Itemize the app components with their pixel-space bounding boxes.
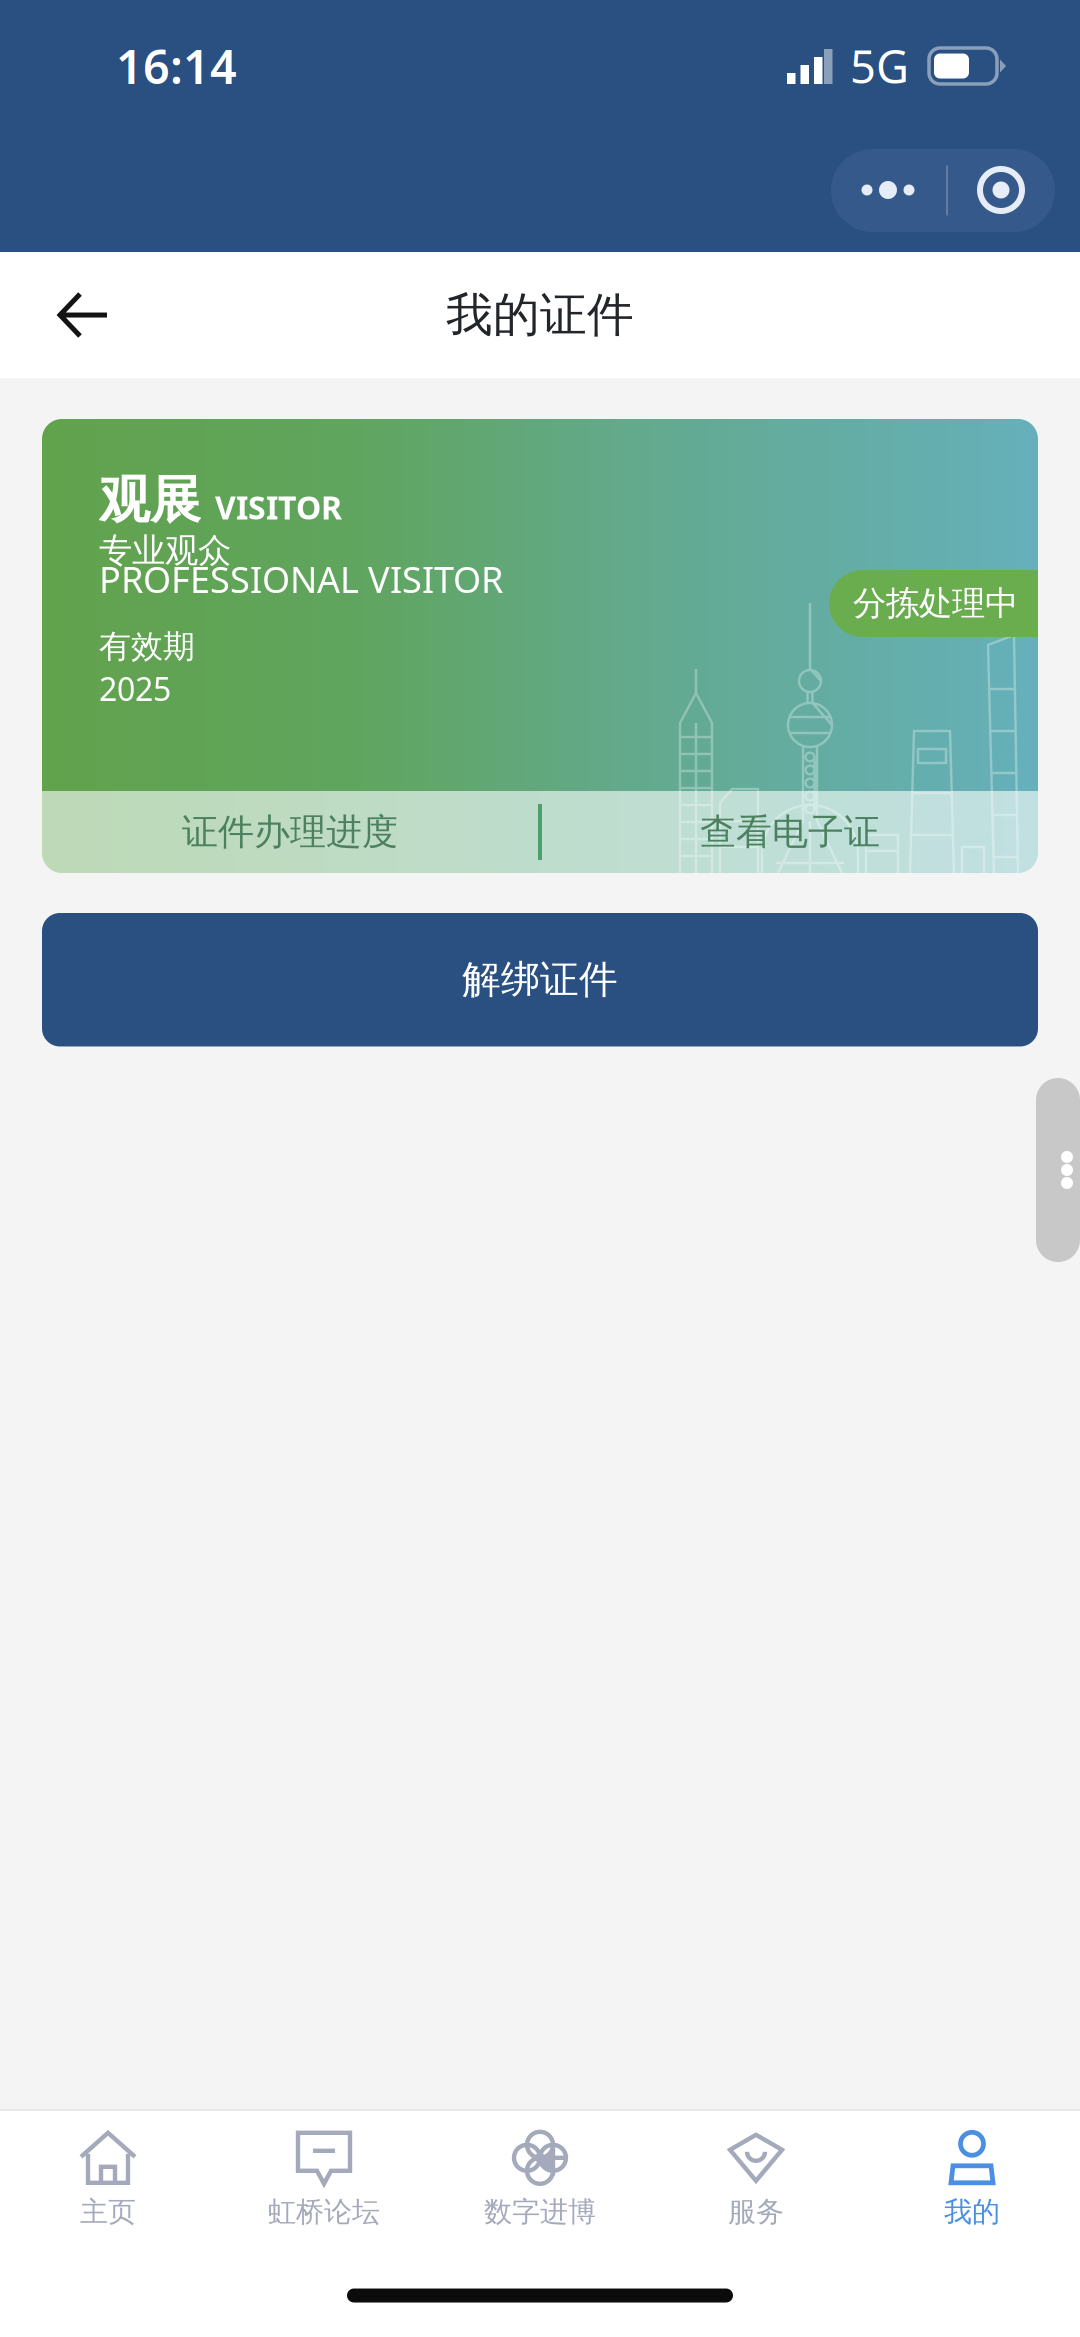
staticText: PROFESSIONAL VISITOR (99, 555, 503, 603)
button[interactable]: Close (948, 149, 1055, 232)
staticText: 查看电子证 (700, 810, 880, 854)
button[interactable]: Back (0, 264, 151, 366)
button[interactable]: 解绑证件 (42, 913, 1038, 1046)
staticText: 专业观众 (99, 530, 231, 571)
button[interactable]: 证件办理进度 (42, 787, 538, 877)
staticText: 16:14 (116, 35, 237, 97)
staticText: 虹桥论坛 (268, 2195, 380, 2229)
staticText: 5G (850, 36, 909, 96)
button[interactable]: More (831, 149, 946, 232)
button[interactable]: 主页 (0, 2118, 216, 2247)
staticText: 我的证件 (446, 286, 634, 344)
staticText: 服务 (728, 2195, 784, 2229)
staticText: 分拣处理中 (853, 583, 1018, 624)
staticText: 证件办理进度 (182, 810, 398, 854)
button[interactable]: 查看电子证 (542, 787, 1038, 877)
button[interactable]: 数字进博 (432, 2118, 648, 2247)
staticText: 观展 (99, 469, 201, 531)
button[interactable]: Customer service (1036, 1078, 1080, 1262)
staticText: 我的 (944, 2195, 1000, 2229)
staticText: 有效期 (99, 627, 195, 666)
button[interactable]: 我的 (864, 2118, 1080, 2247)
staticText: 主页 (80, 2195, 136, 2229)
button[interactable]: 服务 (648, 2118, 864, 2247)
staticText: 数字进博 (484, 2195, 596, 2229)
button[interactable]: 虹桥论坛 (216, 2118, 432, 2247)
staticText: 2025 (99, 667, 171, 710)
staticText: 解绑证件 (462, 956, 618, 1003)
staticText: VISITOR (215, 486, 342, 528)
